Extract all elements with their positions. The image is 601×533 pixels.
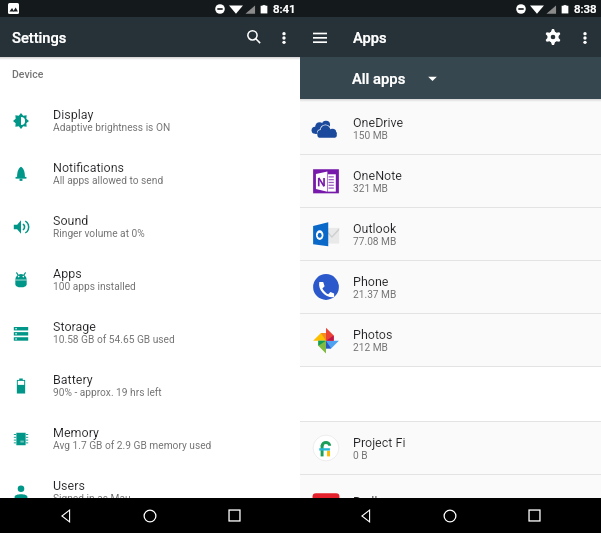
- button[interactable]: Outlook: [300, 208, 601, 260]
- staticText: Settings: [12, 29, 67, 46]
- staticText: OneDrive: [353, 115, 404, 130]
- button[interactable]: Back: [24, 498, 108, 533]
- staticText: Adaptive brightness is ON: [53, 122, 171, 134]
- button[interactable]: Recents: [192, 498, 276, 533]
- staticText: Phone: [353, 274, 389, 289]
- button[interactable]: Apps: [0, 253, 300, 306]
- staticText: 21.37 MB: [353, 289, 397, 301]
- staticText: 321 MB: [353, 183, 388, 195]
- button[interactable]: Phone: [300, 261, 601, 313]
- staticText: Apps: [53, 266, 82, 281]
- staticText: 100 apps installed: [53, 281, 136, 293]
- staticText: Sound: [53, 213, 89, 228]
- button[interactable]: Storage: [0, 306, 300, 359]
- staticText: Memory: [53, 425, 99, 440]
- staticText: Notifications: [53, 160, 125, 175]
- staticText: 8:41: [273, 2, 296, 15]
- staticText: 8:38: [574, 2, 597, 15]
- staticText: 150 MB: [353, 130, 388, 142]
- staticText: Battery: [53, 372, 93, 387]
- staticText: Users: [53, 478, 85, 493]
- button[interactable]: Navigation menu: [300, 17, 340, 57]
- button[interactable]: Redbox: [300, 475, 601, 527]
- button[interactable]: Home: [408, 498, 492, 533]
- button[interactable]: Memory: [0, 412, 300, 465]
- button[interactable]: Home: [108, 498, 192, 533]
- staticText: OneNote: [353, 168, 402, 183]
- staticText: Storage: [53, 319, 96, 334]
- button[interactable]: Sound: [0, 200, 300, 253]
- staticText: 212 MB: [353, 342, 388, 354]
- button[interactable]: OneDrive: [300, 102, 601, 154]
- button[interactable]: Users: [0, 465, 300, 518]
- button[interactable]: Recents: [492, 498, 576, 533]
- staticText: Photos: [353, 327, 393, 342]
- staticText: 90% - approx. 19 hrs left: [53, 387, 162, 399]
- staticText: Device: [12, 68, 44, 80]
- button[interactable]: OneNote: [300, 155, 601, 207]
- staticText: Apps: [353, 29, 387, 46]
- staticText: Signed in as Mau: [53, 493, 131, 505]
- button[interactable]: Back: [324, 498, 408, 533]
- staticText: All apps: [352, 70, 406, 87]
- button[interactable]: More options: [568, 21, 601, 54]
- button[interactable]: Notifications: [0, 147, 300, 200]
- button[interactable]: More options: [267, 21, 300, 54]
- staticText: 0 B: [353, 450, 368, 462]
- staticText: Ringer volume at 0%: [53, 228, 145, 240]
- button[interactable]: All apps: [300, 57, 601, 99]
- button[interactable]: Battery: [0, 359, 300, 412]
- staticText: Display: [53, 107, 94, 122]
- staticText: Project Fi: [353, 435, 406, 450]
- button[interactable]: Search: [240, 17, 267, 57]
- staticText: 77.08 MB: [353, 236, 397, 248]
- staticText: 10.58 GB of 54.65 GB used: [53, 334, 175, 346]
- staticText: Avg 1.7 GB of 2.9 GB memory used: [53, 440, 212, 452]
- staticText: Redbox: [353, 494, 395, 509]
- staticText: All apps allowed to send: [53, 175, 164, 187]
- button[interactable]: Photos: [300, 314, 601, 366]
- button[interactable]: Settings: [537, 17, 568, 57]
- button[interactable]: Project Fi: [300, 422, 601, 474]
- button[interactable]: Display: [0, 94, 300, 147]
- staticText: Outlook: [353, 221, 397, 236]
